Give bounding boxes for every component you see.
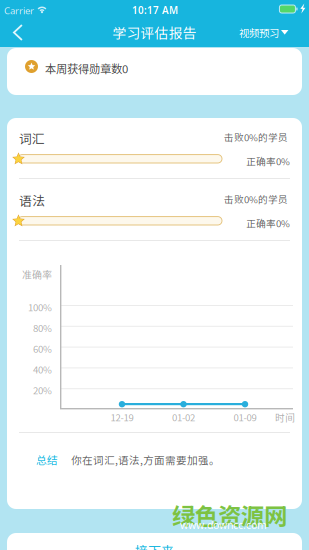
staticText: 01-09: [233, 410, 256, 424]
staticText: 你在词汇,语法,方面需要加强。: [71, 452, 220, 467]
staticText: 准确率: [22, 267, 52, 281]
staticText: 40%: [33, 362, 52, 376]
staticText: 学习评估报告: [112, 22, 196, 43]
staticText: www.downcc.com: [180, 518, 267, 532]
staticText: 60%: [33, 342, 52, 355]
staticText: 本周获得勋章数0: [45, 60, 128, 76]
staticText: 正确率0%: [246, 216, 290, 230]
button[interactable]: 视频预习: [229, 18, 299, 47]
staticText: 12-19: [110, 410, 133, 424]
button[interactable]: Back: [0, 18, 36, 47]
staticText: 100%: [28, 300, 52, 314]
staticText: 正确率0%: [246, 154, 290, 168]
staticText: 20%: [33, 383, 52, 397]
staticText: 01-02: [172, 410, 195, 424]
staticText: 绿色资源网: [172, 498, 287, 532]
staticText: 80%: [33, 321, 52, 335]
staticText: Carrier: [4, 4, 34, 17]
staticText: 词汇: [19, 129, 45, 147]
staticText: 视频预习: [239, 25, 279, 40]
staticText: 时间: [275, 410, 295, 424]
staticText: 接下来: [135, 541, 174, 550]
staticText: 总结: [36, 452, 58, 467]
staticText: 10:17 AM: [132, 3, 178, 17]
staticText: 击败0%的学员: [224, 192, 288, 206]
staticText: 击败0%的学员: [224, 130, 288, 144]
staticText: 语法: [19, 191, 45, 209]
